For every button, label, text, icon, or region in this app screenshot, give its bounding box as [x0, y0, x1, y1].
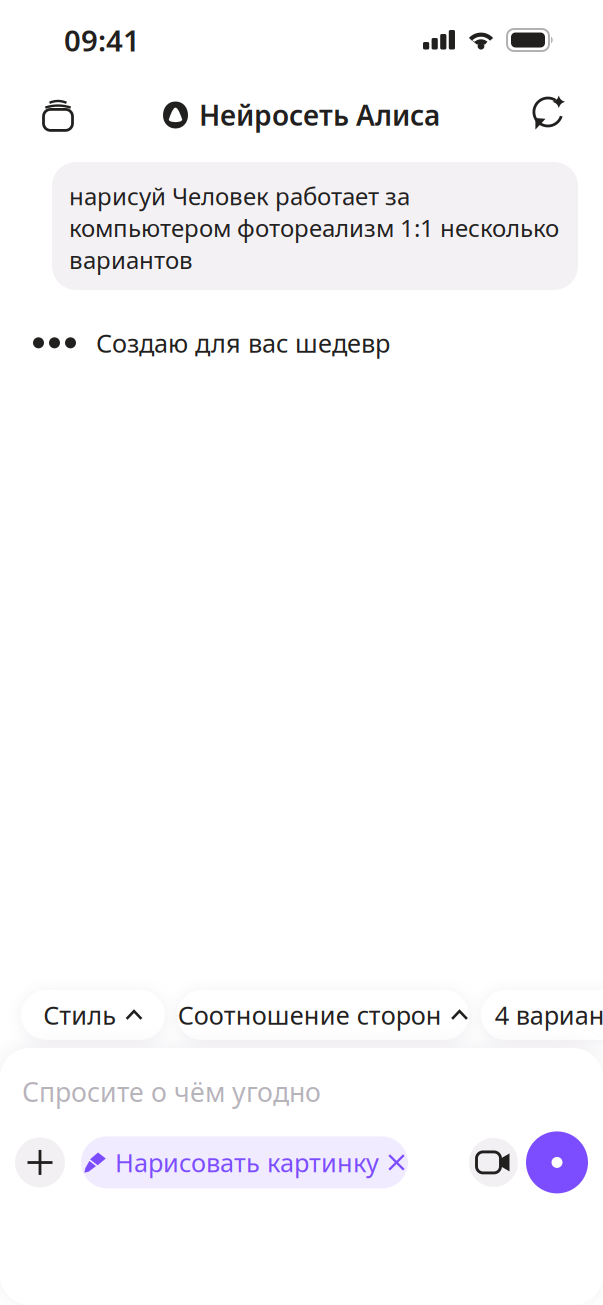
button[interactable]: Video [469, 1138, 518, 1187]
button[interactable]: New chat [520, 86, 578, 144]
staticText: нарисуй Человек работает за компьютером … [69, 180, 559, 276]
button[interactable]: Нарисовать картинку [81, 1136, 408, 1188]
staticText: Нарисовать картинку [115, 1146, 379, 1179]
staticText: Соотношение сторон [178, 998, 442, 1032]
staticText: 4 варианта [495, 998, 603, 1032]
button[interactable]: Add attachment [15, 1137, 65, 1187]
staticText: Создаю для вас шедевр [96, 326, 390, 360]
button[interactable]: 4 варианта [481, 990, 603, 1040]
button[interactable]: Voice input [526, 1131, 588, 1193]
button[interactable]: Chats [29, 86, 87, 144]
staticText: Стиль [43, 998, 116, 1032]
staticText: Спросите о чём угодно [22, 1074, 321, 1109]
staticText: Нейросеть Алиса [199, 96, 440, 134]
button[interactable]: Соотношение сторон [177, 990, 469, 1040]
button[interactable]: Стиль [21, 990, 165, 1040]
staticText: 09:41 [64, 20, 140, 59]
